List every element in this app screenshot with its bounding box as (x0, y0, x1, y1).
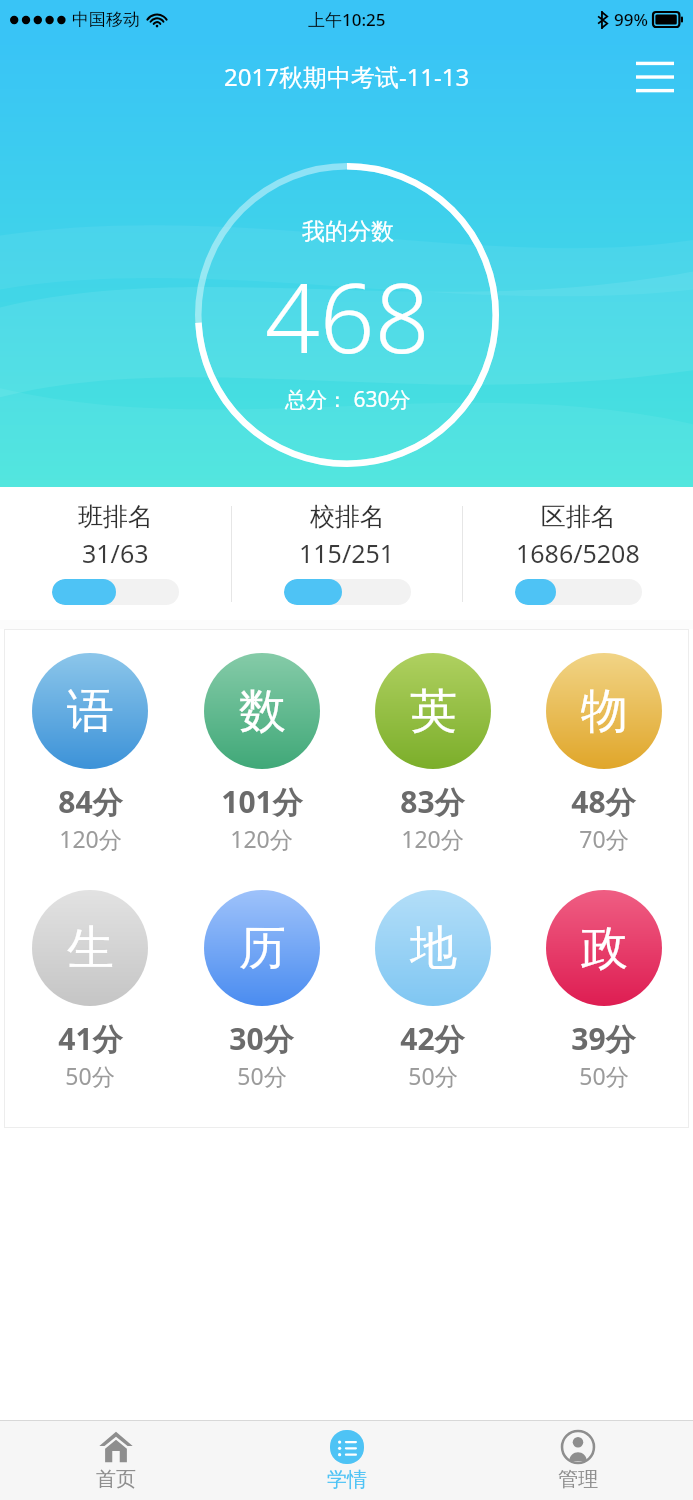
staticText: 我的分数 (302, 217, 394, 246)
staticText: 历 (239, 919, 286, 978)
staticText: 区排名 (541, 501, 616, 532)
staticText: 语 (67, 682, 114, 741)
staticText: 41分 (58, 1018, 123, 1059)
staticText: 70分 (579, 823, 629, 854)
staticText: 管理 (558, 1467, 598, 1492)
staticText: 30分 (229, 1018, 294, 1059)
button[interactable]: 区排名 (463, 487, 693, 620)
button[interactable]: 生 (4, 890, 176, 1091)
button[interactable]: 管理 (462, 1421, 693, 1500)
staticText: 上午10:25 (308, 8, 386, 31)
button[interactable]: 历 (176, 890, 347, 1091)
staticText: 英 (410, 682, 457, 741)
staticText: 2017秋期中考试-11-13 (224, 60, 470, 93)
staticText: 数 (239, 682, 286, 741)
staticText: 50分 (65, 1060, 115, 1091)
staticText: 39分 (571, 1018, 636, 1059)
staticText: 120分 (59, 823, 122, 854)
staticText: 48分 (571, 781, 636, 822)
staticText: 班排名 (78, 501, 153, 532)
staticText: 物 (581, 682, 628, 741)
staticText: 生 (67, 919, 114, 978)
button[interactable]: 首页 (0, 1421, 231, 1500)
staticText: 50分 (408, 1060, 458, 1091)
button[interactable]: 物 (518, 653, 689, 854)
staticText: 115/251 (299, 536, 395, 570)
staticText: 101分 (221, 781, 303, 822)
staticText: 42分 (400, 1018, 465, 1059)
button[interactable]: 英 (347, 653, 518, 854)
button[interactable]: Menu (631, 52, 679, 100)
staticText: 50分 (237, 1060, 287, 1091)
staticText: 84分 (58, 781, 123, 822)
button[interactable]: 校排名 (232, 487, 462, 620)
button[interactable]: 班排名 (0, 487, 231, 620)
button[interactable]: 语 (4, 653, 176, 854)
staticText: 校排名 (310, 501, 385, 532)
staticText: 468 (265, 250, 430, 381)
staticText: 政 (581, 919, 628, 978)
staticText: 50分 (579, 1060, 629, 1091)
staticText: 学情 (327, 1467, 367, 1492)
staticText: 99% (614, 8, 648, 31)
staticText: 31/63 (82, 536, 149, 570)
staticText: 83分 (400, 781, 465, 822)
staticText: 120分 (401, 823, 464, 854)
staticText: 总分： 630分 (285, 385, 411, 414)
button[interactable]: 数 (176, 653, 347, 854)
staticText: 1686/5208 (516, 536, 640, 570)
staticText: 地 (410, 919, 457, 978)
button[interactable]: 地 (347, 890, 518, 1091)
staticText: 120分 (230, 823, 293, 854)
staticText: 中国移动 (72, 9, 140, 30)
staticText: 首页 (96, 1467, 136, 1492)
button[interactable]: 学情 (231, 1421, 462, 1500)
button[interactable]: 政 (518, 890, 689, 1091)
